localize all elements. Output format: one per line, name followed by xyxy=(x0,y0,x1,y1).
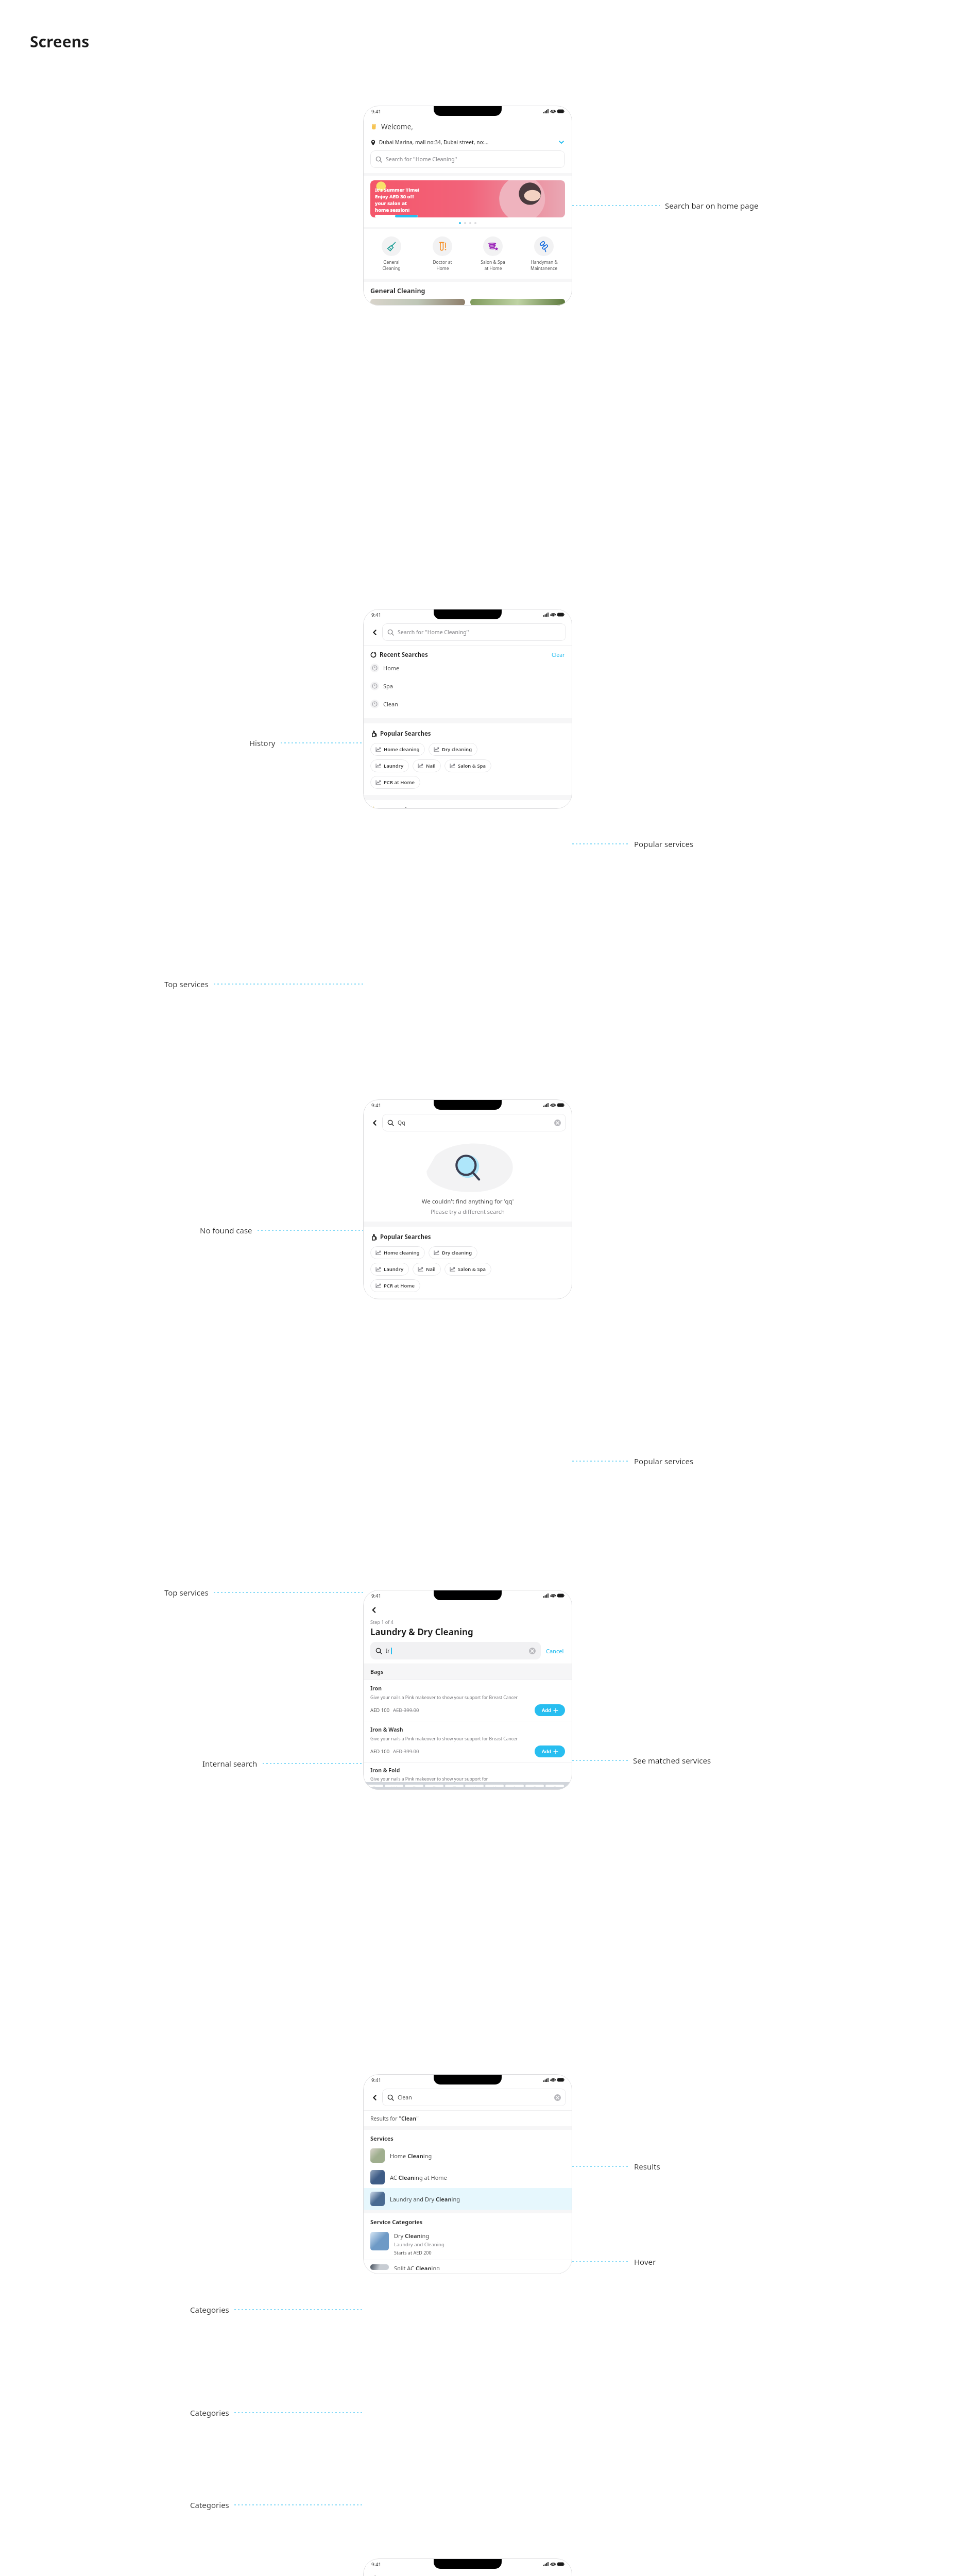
staticText: AED 100 xyxy=(370,1748,390,1755)
button[interactable]: Iron & Wash xyxy=(363,1721,572,1762)
button[interactable]: Dry cleaning xyxy=(429,743,477,756)
button[interactable]: Laundry xyxy=(370,759,409,772)
staticText: Qq xyxy=(398,1119,405,1126)
button[interactable]: O xyxy=(525,1785,544,1787)
button[interactable]: Clean xyxy=(370,695,565,713)
button[interactable]: I xyxy=(505,1785,524,1787)
staticText: Clear xyxy=(552,651,565,658)
staticText: Nail xyxy=(426,762,436,769)
staticText: Dry cleaning xyxy=(442,1249,472,1256)
staticText: Popular Searches xyxy=(380,1233,431,1241)
staticText: AED 100 xyxy=(370,1707,390,1714)
staticText: Screens xyxy=(30,31,90,52)
staticText: Hover xyxy=(634,2257,656,2267)
staticText: Spa xyxy=(383,682,393,690)
button[interactable]: Back xyxy=(369,1117,380,1128)
button[interactable]: Home cleaning xyxy=(370,743,425,756)
button[interactable]: PCR at Home xyxy=(370,1279,420,1292)
button[interactable]: Dry Cleaning xyxy=(363,2228,572,2260)
staticText: Cleaning xyxy=(382,265,401,272)
staticText: Home cleaning xyxy=(384,746,420,753)
button[interactable]: Search for ''Home Cleaning'' xyxy=(382,623,566,641)
staticText: 9:41 xyxy=(371,108,381,115)
staticText: General Cleaning xyxy=(370,286,425,295)
button[interactable]: Nail xyxy=(413,1263,441,1276)
button[interactable]: Y xyxy=(465,1785,484,1787)
button[interactable]: Search for ''Home Cleaning'' xyxy=(370,150,565,168)
button[interactable]: Spa xyxy=(370,677,565,695)
button[interactable]: General xyxy=(368,235,415,273)
button[interactable]: Dry cleaning xyxy=(429,1246,477,1259)
button[interactable]: Handyman & xyxy=(521,235,567,273)
staticText: 9:41 xyxy=(371,612,381,618)
button[interactable]: E xyxy=(405,1785,423,1787)
button[interactable]: U xyxy=(485,1785,504,1787)
staticText: Cancel xyxy=(546,1647,564,1655)
button[interactable]: P xyxy=(545,1785,564,1787)
button[interactable]: Split AC Cleaning xyxy=(363,2260,572,2274)
button[interactable]: Clear text xyxy=(554,1120,561,1126)
staticText: PCR at Home xyxy=(384,779,415,786)
staticText: your salon at xyxy=(375,200,407,207)
button[interactable]: Salon & Spa xyxy=(444,759,491,772)
staticText: Recent Searches xyxy=(380,651,552,659)
button[interactable]: Salon & Spa xyxy=(444,1263,491,1276)
button[interactable]: R xyxy=(425,1785,443,1787)
button[interactable]: Back xyxy=(363,2574,382,2576)
staticText: History xyxy=(249,738,276,748)
button[interactable]: Home cleaning xyxy=(370,1246,425,1259)
button[interactable]: Clear text xyxy=(529,1648,536,1654)
staticText: Top services xyxy=(164,979,209,989)
button[interactable]: Salon & Spa xyxy=(470,235,516,273)
staticText: Results xyxy=(634,2161,660,2172)
button[interactable]: Add xyxy=(535,1745,565,1757)
staticText: General xyxy=(383,259,400,265)
button[interactable]: Iron xyxy=(363,1680,572,1721)
staticText: Home xyxy=(383,664,400,672)
button[interactable]: Laundry xyxy=(370,1263,409,1276)
staticText: We couldn't find anything for 'qq' xyxy=(363,1197,572,1206)
button[interactable]: Nail xyxy=(413,759,441,772)
staticText: Laundry & Dry Cleaning xyxy=(370,1626,473,1638)
button[interactable]: Laundry and Dry Cleaning xyxy=(363,2188,572,2210)
staticText: Laundry and Dry Cleaning xyxy=(390,2195,460,2203)
staticText: Handyman & xyxy=(531,259,558,265)
button[interactable]: Home xyxy=(370,659,565,677)
button[interactable]: Doctor at xyxy=(419,235,466,273)
button[interactable]: Cancel xyxy=(541,1647,565,1655)
staticText: Iron xyxy=(370,1685,382,1692)
staticText: Iron & Fold xyxy=(370,1767,400,1774)
staticText: Popular services xyxy=(634,839,694,849)
button[interactable]: W xyxy=(385,1785,403,1787)
button[interactable]: T xyxy=(445,1785,464,1787)
button[interactable]: Clear xyxy=(552,651,565,658)
staticText: Add xyxy=(542,1748,552,1755)
button[interactable]: Home Cleaning xyxy=(363,2145,572,2166)
button[interactable]: Q xyxy=(365,1785,383,1787)
button[interactable]: AC Cleaning at Home xyxy=(363,2166,572,2188)
button[interactable]: Ir xyxy=(370,1642,541,1659)
button[interactable]: Dubai Marina, mall no:34, Dubai street, … xyxy=(363,139,572,146)
staticText: See matched services xyxy=(633,1755,711,1766)
button[interactable]: Qq xyxy=(382,1114,566,1131)
button[interactable]: Clean xyxy=(382,2089,566,2106)
button[interactable]: Back xyxy=(369,2092,380,2103)
staticText: Laundry xyxy=(384,762,404,769)
staticText: Salon & Spa xyxy=(458,762,486,769)
staticText: 9:41 xyxy=(371,2077,381,2083)
staticText: Popular Searches xyxy=(380,730,431,738)
button[interactable]: Back xyxy=(369,627,380,638)
staticText: AED 399.00 xyxy=(393,1748,419,1755)
staticText: Split AC Cleaning xyxy=(394,2264,440,2270)
button[interactable]: Back xyxy=(363,1605,382,1615)
button[interactable]: It's Summer Time! xyxy=(370,180,565,217)
button[interactable]: Clear text xyxy=(554,2094,561,2101)
button[interactable]: PCR at Home xyxy=(370,776,420,789)
staticText: 9:41 xyxy=(371,1592,381,1599)
staticText: Add xyxy=(542,1707,552,1714)
button[interactable]: Add xyxy=(535,1704,565,1716)
staticText: Home Cleaning xyxy=(390,2152,432,2160)
